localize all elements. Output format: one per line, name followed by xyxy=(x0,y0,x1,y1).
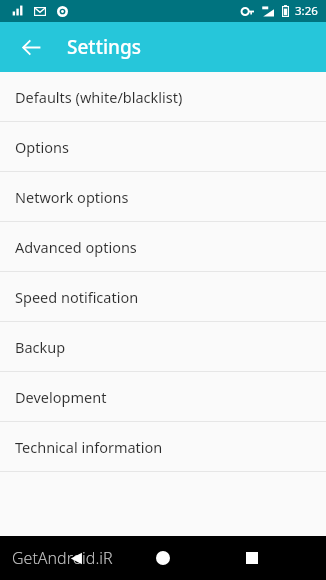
staticText: GetAndroid.iR xyxy=(12,547,113,569)
staticText: Options xyxy=(15,137,69,157)
button[interactable]: Back xyxy=(9,25,53,69)
button[interactable]: Options xyxy=(0,122,326,172)
button[interactable]: Defaults (white/blacklist) xyxy=(0,72,326,122)
button[interactable]: Advanced options xyxy=(0,222,326,272)
staticText: Development xyxy=(15,387,107,407)
staticText: Advanced options xyxy=(15,237,137,257)
staticText: Network options xyxy=(15,187,129,207)
staticText: Speed notification xyxy=(15,287,139,307)
staticText: Backup xyxy=(15,337,66,357)
button[interactable]: Technical information xyxy=(0,422,326,472)
button[interactable]: Backup xyxy=(0,322,326,372)
staticText: 3:26 xyxy=(295,3,318,19)
button[interactable]: Home xyxy=(142,537,184,579)
button[interactable]: Recent apps xyxy=(231,537,273,579)
button[interactable]: Development xyxy=(0,372,326,422)
staticText: Settings xyxy=(67,34,141,60)
button[interactable]: Network options xyxy=(0,172,326,222)
staticText: Defaults (white/blacklist) xyxy=(15,87,183,107)
button[interactable]: Speed notification xyxy=(0,272,326,322)
staticText: Technical information xyxy=(15,437,163,457)
button[interactable]: Back xyxy=(55,537,97,579)
